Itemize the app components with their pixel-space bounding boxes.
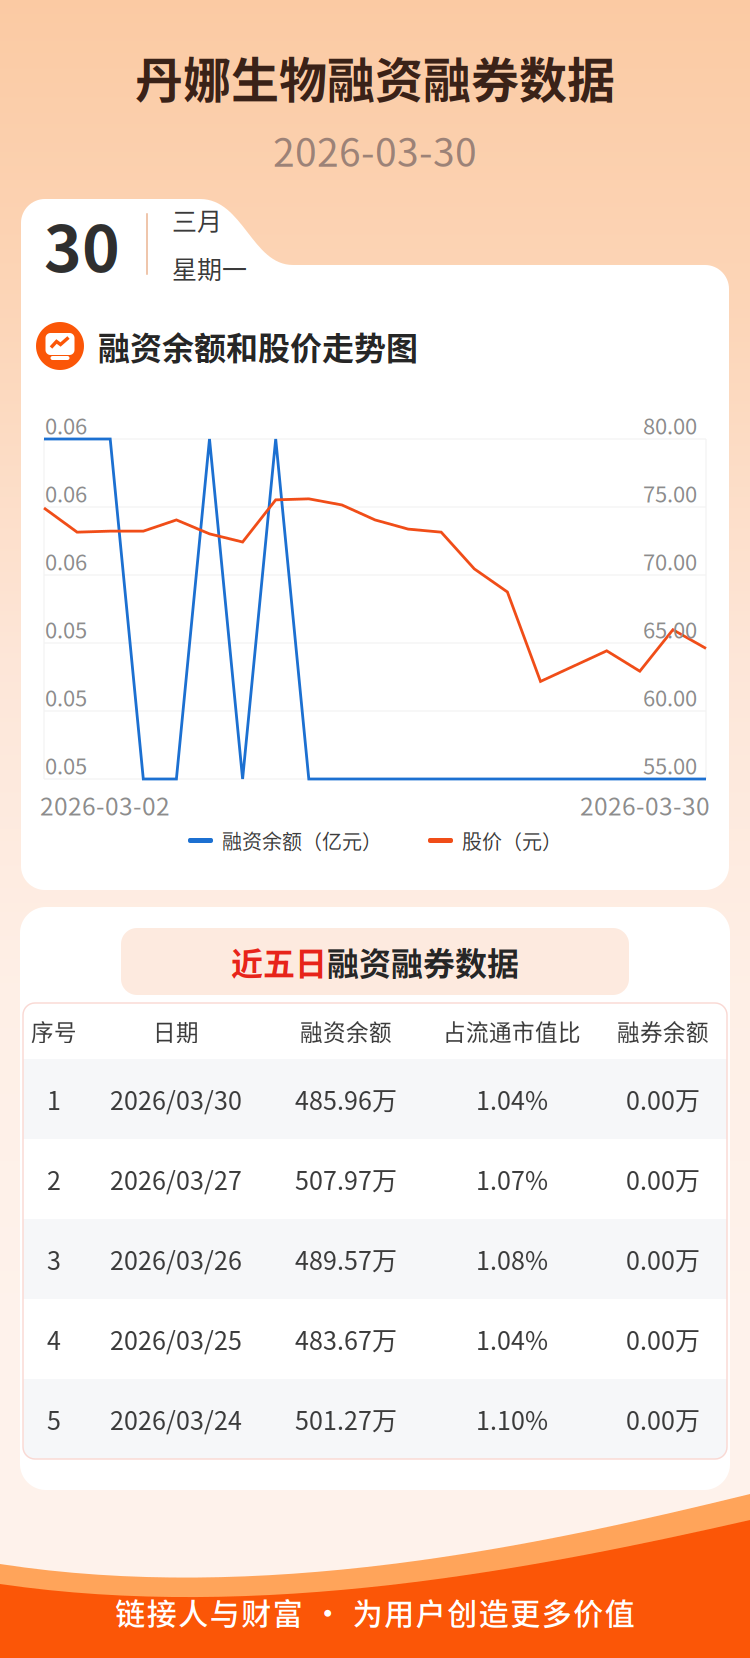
staticText: 1.08% [476,1241,548,1277]
staticText: 融资融券数据 [327,938,519,985]
staticText: 0.05 [45,681,87,713]
staticText: 融券余额 [617,1015,709,1047]
staticText: 股价（元） [462,826,562,855]
staticText: 2026/03/30 [110,1081,242,1117]
staticText: 55.00 [643,749,697,781]
staticText: 2026/03/24 [110,1401,242,1437]
staticText: 占流通市值比 [443,1015,581,1047]
staticText: 1 [47,1081,61,1117]
staticText: 0.00万 [626,1161,700,1197]
staticText: 融资余额（亿元） [222,826,382,855]
staticText: 485.96万 [295,1081,397,1117]
staticText: 2026/03/26 [110,1241,242,1277]
staticText: 2026-03-30 [273,121,477,178]
staticText: 4 [47,1321,61,1357]
staticText: 1.10% [476,1401,548,1437]
staticText: 链接人与财富 · 为用户创造更多价值 [115,1590,635,1633]
staticText: 483.67万 [295,1321,397,1357]
staticText: 70.00 [643,545,697,577]
staticText: 5 [47,1401,61,1437]
staticText: 0.05 [45,613,87,645]
staticText: 0.06 [45,409,87,441]
staticText: 0.06 [45,477,87,509]
staticText: 60.00 [643,681,697,713]
staticText: 融资余额和股价走势图 [98,323,418,369]
staticText: 2 [47,1161,61,1197]
staticText: 0.00万 [626,1081,700,1117]
staticText: 507.97万 [295,1161,397,1197]
staticText: 3 [47,1241,61,1277]
staticText: 80.00 [643,409,697,441]
staticText: 日期 [153,1015,199,1047]
staticText: 2026-03-30 [580,787,710,822]
staticText: 0.06 [45,545,87,577]
staticText: 30 [44,198,120,290]
staticText: 1.04% [476,1321,548,1357]
staticText: 1.04% [476,1081,548,1117]
staticText: 2026/03/27 [110,1161,242,1197]
staticText: 近五日 [231,938,327,985]
staticText: 丹娜生物融资融券数据 [135,42,615,111]
staticText: 2026/03/25 [110,1321,242,1357]
staticText: 489.57万 [295,1241,397,1277]
staticText: 0.00万 [626,1401,700,1437]
staticText: 2026-03-02 [40,787,170,822]
staticText: 65.00 [643,613,697,645]
staticText: 1.07% [476,1161,548,1197]
staticText: 星期一 [172,250,247,286]
staticText: 三月 [172,202,222,238]
staticText: 0.00万 [626,1241,700,1277]
staticText: 501.27万 [295,1401,397,1437]
staticText: 序号 [31,1015,77,1047]
staticText: 0.00万 [626,1321,700,1357]
staticText: 融资余额 [300,1015,392,1047]
staticText: 0.05 [45,749,87,781]
staticText: 75.00 [643,477,697,509]
